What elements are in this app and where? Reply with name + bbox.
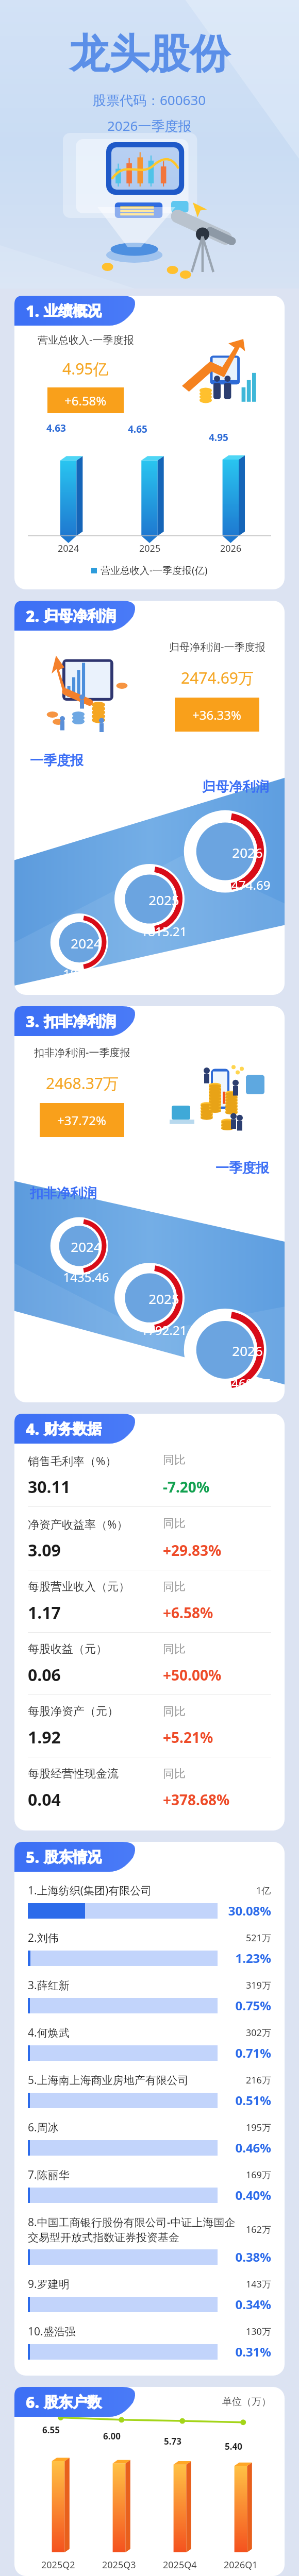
- staticText: 扣非净利润-一季度报: [34, 1045, 130, 1059]
- staticText: 143万: [246, 2278, 271, 2291]
- staticText: 1435.46: [57, 1268, 115, 1285]
- staticText: 每股经营性现金流: [28, 1767, 163, 1781]
- staticText: 0.34%: [224, 2296, 271, 2313]
- button[interactable]: 3.薛红新: [28, 1972, 271, 2019]
- button[interactable]: 每股收益（元）: [28, 1633, 271, 1694]
- staticText: +378.68%: [163, 1790, 271, 1809]
- staticText: 营业总收入-一季度报(亿): [101, 564, 208, 577]
- staticText: 0.06: [28, 1664, 163, 1686]
- staticText: 5.上海南上海商业房地产有限公司: [28, 2073, 241, 2088]
- staticText: 7.陈丽华: [28, 2167, 241, 2182]
- staticText: 4.63: [46, 421, 66, 435]
- staticText: 2.刘伟: [28, 1930, 241, 1945]
- button[interactable]: 每股营业收入（元）: [28, 1570, 271, 1632]
- button[interactable]: 8.中国工商银行股份有限公司-中证上海国企交易型开放式指数证券投资基金: [28, 2209, 271, 2270]
- staticText: 2025: [139, 891, 189, 909]
- staticText: 2025Q2: [41, 2558, 75, 2571]
- button[interactable]: 净资产收益率（%）: [28, 1507, 271, 1570]
- staticText: 319万: [246, 1979, 271, 1992]
- staticText: 2025Q3: [102, 2558, 136, 2571]
- staticText: 4.95亿: [62, 358, 109, 379]
- staticText: 10.盛浩强: [28, 2324, 241, 2339]
- staticText: 一季度报: [30, 752, 84, 769]
- button[interactable]: 2.刘伟: [28, 1924, 271, 1972]
- staticText: 归母净利润: [202, 778, 269, 795]
- button[interactable]: 9.罗建明: [28, 2270, 271, 2318]
- staticText: 一季度报: [215, 1160, 269, 1177]
- button[interactable]: 每股净资产（元）: [28, 1695, 271, 1757]
- staticText: 3.: [26, 1011, 40, 1032]
- staticText: 扣非净利润: [30, 1185, 97, 1202]
- staticText: +37.72%: [57, 1112, 107, 1129]
- staticText: 4.何焕武: [28, 2025, 241, 2040]
- staticText: 0.71%: [224, 2044, 271, 2061]
- staticText: +6.58%: [163, 1603, 271, 1622]
- staticText: 1815.21: [135, 923, 193, 940]
- staticText: 162万: [246, 2223, 271, 2236]
- staticText: 股东户数: [44, 2393, 102, 2411]
- button[interactable]: 7.陈丽华: [28, 2161, 271, 2209]
- staticText: 216万: [246, 2074, 271, 2087]
- button[interactable]: 10.盛浩强: [28, 2318, 271, 2365]
- staticText: 2026: [223, 843, 272, 861]
- staticText: 1亿: [256, 1884, 271, 1897]
- staticText: 5.: [26, 1846, 40, 1868]
- button[interactable]: +6.58%: [47, 387, 124, 413]
- staticText: +36.33%: [192, 706, 242, 723]
- staticText: 0.75%: [224, 1997, 271, 2014]
- staticText: 2474.69: [219, 876, 276, 893]
- staticText: 2468.37万: [46, 1073, 119, 1094]
- staticText: 同比: [163, 1580, 271, 1594]
- button[interactable]: 6.周冰: [28, 2114, 271, 2161]
- staticText: 1.17: [28, 1601, 163, 1624]
- button[interactable]: 每股经营性现金流: [28, 1757, 271, 1819]
- staticText: +6.58%: [64, 392, 107, 409]
- staticText: 2026Q1: [224, 2558, 258, 2571]
- staticText: 2024: [61, 1238, 111, 1256]
- button[interactable]: 4.何焕武: [28, 2019, 271, 2066]
- staticText: 2025: [139, 1290, 189, 1308]
- staticText: 9.罗建明: [28, 2277, 241, 2292]
- button[interactable]: +37.72%: [40, 1103, 124, 1137]
- staticText: 2024: [61, 934, 111, 952]
- staticText: 4.: [26, 1418, 40, 1439]
- staticText: 2026: [220, 542, 242, 555]
- staticText: 扣非净利润: [44, 1012, 116, 1030]
- staticText: 2026: [223, 1342, 272, 1360]
- staticText: 1.: [26, 300, 40, 321]
- staticText: 每股净资产（元）: [28, 1704, 163, 1719]
- staticText: 6.: [26, 2392, 40, 2413]
- staticText: 同比: [163, 1453, 271, 1467]
- staticText: 4.95: [209, 431, 228, 444]
- staticText: -7.20%: [163, 1477, 271, 1497]
- staticText: +50.00%: [163, 1665, 271, 1685]
- staticText: 30.11: [28, 1476, 163, 1498]
- staticText: 净资产收益率（%）: [28, 1516, 163, 1532]
- staticText: 单位（万）: [222, 2396, 271, 2408]
- staticText: 每股收益（元）: [28, 1642, 163, 1656]
- staticText: 营业总收入-一季度报: [38, 333, 134, 347]
- staticText: 2468.37: [219, 1375, 276, 1392]
- staticText: 0.04: [28, 1788, 163, 1811]
- button[interactable]: 1.上海纺织(集团)有限公司: [28, 1877, 271, 1924]
- staticText: 股票代码：600630: [93, 91, 206, 109]
- button[interactable]: 5.上海南上海商业房地产有限公司: [28, 2066, 271, 2114]
- button[interactable]: +36.33%: [175, 698, 259, 732]
- staticText: 2025Q4: [163, 2558, 197, 2571]
- staticText: 1792.21: [135, 1321, 193, 1338]
- staticText: 5.73: [164, 2435, 181, 2447]
- staticText: 195万: [246, 2121, 271, 2134]
- staticText: 5.40: [225, 2441, 242, 2452]
- staticText: 2025: [139, 542, 161, 555]
- staticText: 0.51%: [224, 2092, 271, 2109]
- staticText: 6.55: [42, 2424, 60, 2436]
- staticText: 龙头股份: [69, 29, 230, 79]
- staticText: 302万: [246, 2026, 271, 2039]
- staticText: +5.21%: [163, 1727, 271, 1747]
- staticText: 2024: [58, 542, 79, 555]
- staticText: 0.40%: [224, 2187, 271, 2204]
- staticText: 同比: [163, 1642, 271, 1656]
- staticText: 0.31%: [224, 2343, 271, 2360]
- button[interactable]: 销售毛利率（%）: [28, 1444, 271, 1506]
- staticText: 1.上海纺织(集团)有限公司: [28, 1883, 251, 1898]
